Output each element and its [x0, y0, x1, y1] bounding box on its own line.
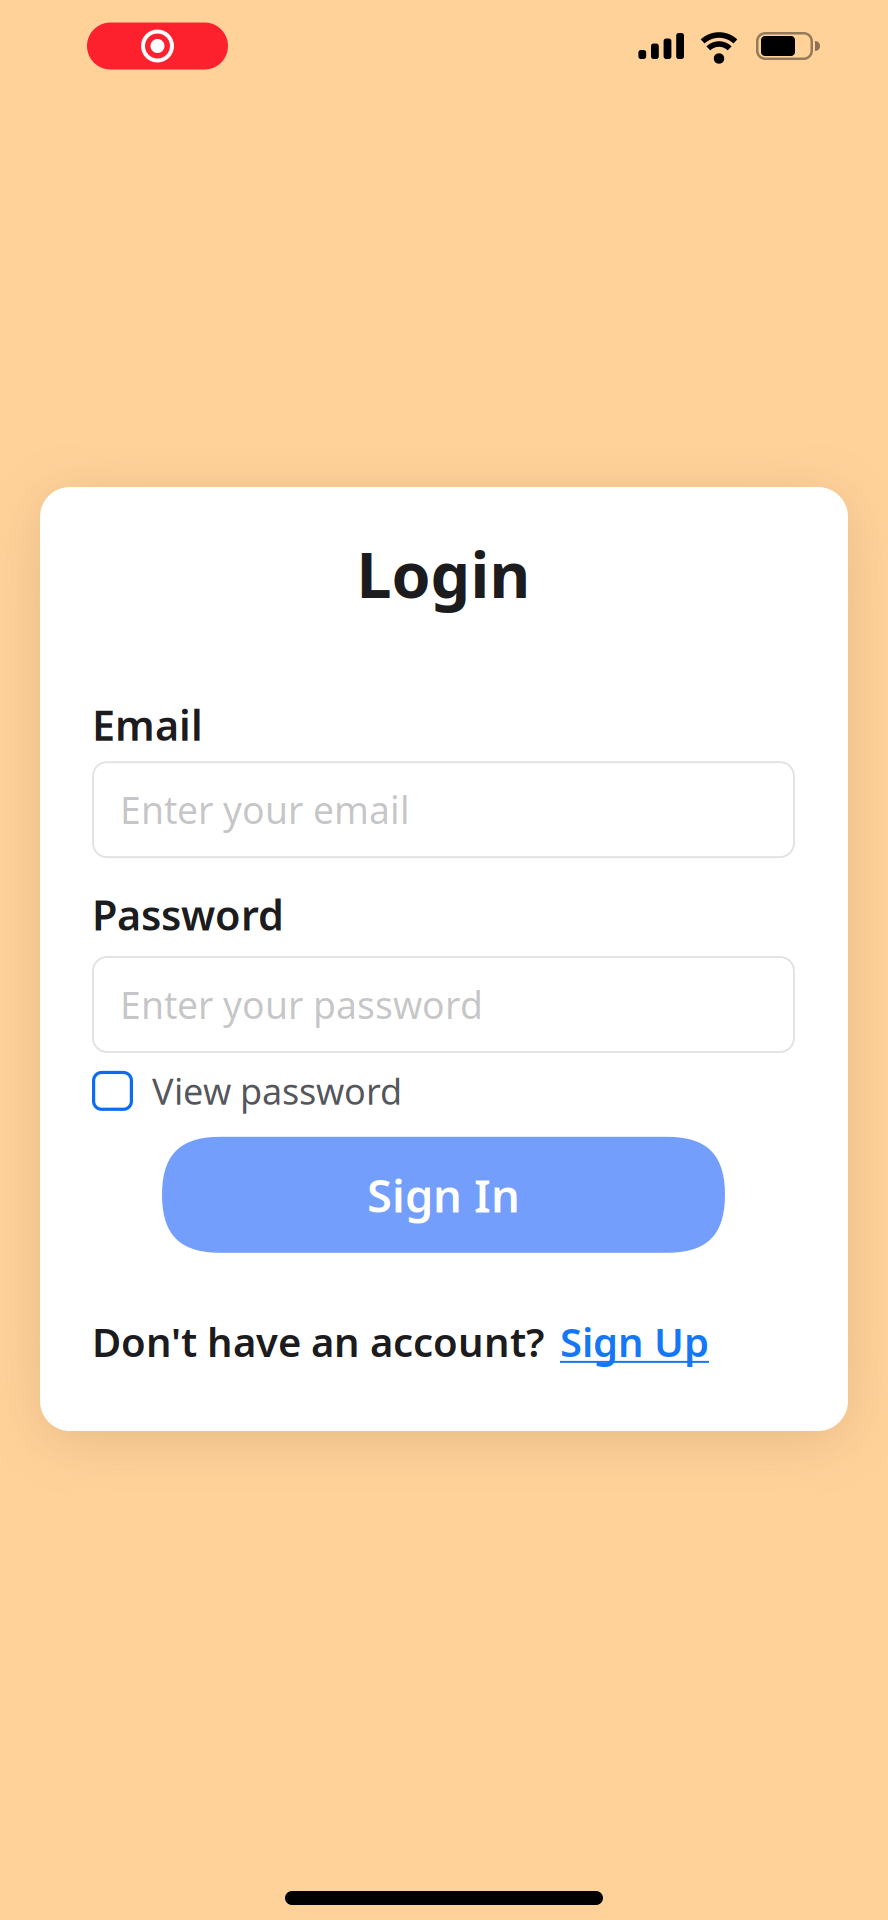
- button[interactable]: Enter your password: [92, 956, 795, 1053]
- button[interactable]: Stop screen recording: [87, 22, 228, 69]
- staticText: Email: [92, 697, 203, 752]
- staticText: Sign Up: [560, 1315, 709, 1368]
- staticText: Password: [92, 887, 284, 942]
- staticText: Login: [356, 532, 530, 615]
- staticText: Enter your email: [120, 785, 410, 834]
- button[interactable]: Sign In: [162, 1137, 725, 1253]
- staticText: View password: [152, 1067, 402, 1115]
- staticText: Sign In: [367, 1165, 520, 1225]
- button[interactable]: View password: [92, 1067, 402, 1115]
- staticText: Enter your password: [120, 980, 483, 1029]
- button[interactable]: Sign Up: [560, 1315, 709, 1368]
- staticText: Don't have an account?: [92, 1315, 544, 1368]
- button[interactable]: Enter your email: [92, 761, 795, 858]
